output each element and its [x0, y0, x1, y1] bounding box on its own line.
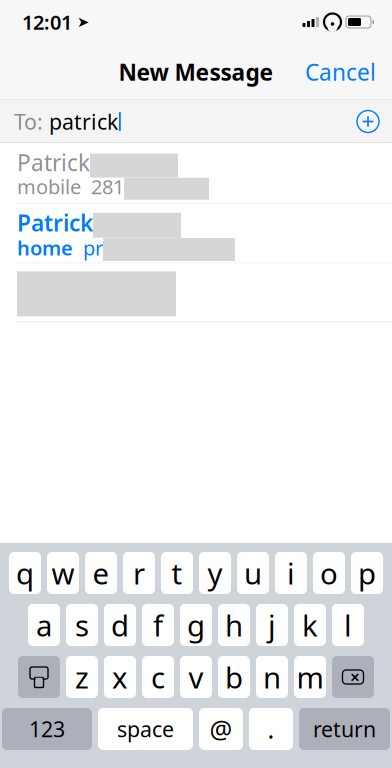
staticText: n — [263, 657, 281, 696]
button[interactable]: p — [351, 552, 383, 594]
button[interactable]: e — [85, 552, 117, 594]
staticText: d — [111, 605, 129, 644]
staticText: i — [287, 553, 295, 592]
staticText: u — [244, 553, 262, 592]
staticText: r — [133, 553, 145, 592]
button[interactable]: v — [180, 656, 212, 698]
button[interactable]: return — [299, 708, 390, 750]
staticText: home — [17, 234, 73, 261]
staticText: f — [153, 605, 163, 644]
button[interactable]: a — [28, 604, 60, 646]
button[interactable]: Patrick — [0, 143, 392, 203]
staticText: b — [225, 657, 243, 696]
button[interactable]: u — [237, 552, 269, 594]
staticText: e — [92, 553, 109, 592]
staticText: . — [267, 712, 274, 746]
staticText: space — [117, 715, 174, 743]
button[interactable]: d — [104, 604, 136, 646]
button[interactable]: l — [332, 604, 364, 646]
button[interactable]: n — [256, 656, 288, 698]
staticText: c — [151, 657, 165, 696]
staticText: ➤ — [72, 14, 89, 30]
staticText: w — [51, 553, 74, 592]
button[interactable]: y — [199, 552, 231, 594]
staticText: New Message — [118, 57, 273, 87]
button[interactable]: Patrick — [0, 204, 392, 263]
staticText: a — [36, 605, 52, 644]
button[interactable]: j — [256, 604, 288, 646]
button[interactable]: t — [161, 552, 193, 594]
button[interactable] — [0, 263, 392, 321]
staticText: 12:01 — [22, 9, 72, 35]
button[interactable]: Add contact — [350, 103, 386, 139]
button[interactable]: x — [104, 656, 136, 698]
staticText: x — [112, 657, 128, 696]
button[interactable]: k — [294, 604, 326, 646]
button[interactable]: g — [180, 604, 212, 646]
staticText: × — [350, 665, 360, 688]
staticText: g — [187, 605, 205, 644]
staticText: k — [302, 605, 318, 644]
staticText: v — [188, 657, 203, 696]
button[interactable]: i — [275, 552, 307, 594]
staticText: @ — [209, 712, 232, 746]
staticText: o — [320, 553, 338, 592]
button[interactable]: Shift — [18, 656, 60, 698]
staticText: return — [313, 715, 376, 743]
button[interactable]: r — [123, 552, 155, 594]
staticText: j — [268, 605, 276, 644]
button[interactable]: space — [98, 708, 193, 750]
staticText: Patrick — [17, 208, 93, 238]
button[interactable]: h — [218, 604, 250, 646]
staticText: To: — [14, 107, 49, 136]
staticText: y — [207, 553, 222, 592]
button[interactable]: . — [249, 708, 293, 750]
button[interactable]: 123 — [2, 708, 92, 750]
button[interactable]: z — [66, 656, 98, 698]
staticText: m — [296, 657, 323, 696]
staticText: t — [171, 553, 182, 592]
button[interactable]: @ — [199, 708, 243, 750]
staticText: s — [75, 605, 89, 644]
button[interactable]: w — [47, 552, 79, 594]
button[interactable]: m — [294, 656, 326, 698]
staticText: z — [75, 657, 89, 696]
staticText: l — [344, 605, 352, 644]
staticText: 123 — [29, 715, 65, 743]
staticText: mobile 281 — [17, 173, 124, 200]
staticText: Patrick — [17, 147, 90, 177]
button[interactable]: b — [218, 656, 250, 698]
button[interactable]: o — [313, 552, 345, 594]
staticText: Cancel — [305, 57, 376, 87]
button[interactable]: f — [142, 604, 174, 646]
staticText: h — [225, 605, 243, 644]
button[interactable]: c — [142, 656, 174, 698]
staticText: q — [16, 553, 34, 592]
button[interactable]: Delete — [332, 656, 374, 698]
button[interactable]: q — [9, 552, 41, 594]
button[interactable]: Cancel — [289, 45, 392, 99]
staticText: patrick — [49, 107, 118, 136]
button[interactable]: s — [66, 604, 98, 646]
staticText: pr — [73, 234, 103, 261]
staticText: p — [358, 553, 376, 592]
